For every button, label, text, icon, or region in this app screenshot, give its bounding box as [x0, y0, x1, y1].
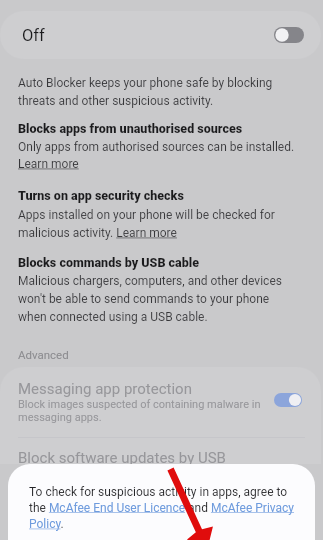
staticText: Apps installed on your phone will be che…	[18, 208, 297, 240]
staticText: Blocks commands by USB cable	[18, 255, 297, 270]
staticText: Block images suspected of containing mal…	[18, 398, 268, 424]
staticText: Off	[22, 26, 45, 45]
staticText: Auto Blocker keeps your phone safe by bl…	[18, 76, 297, 108]
button[interactable]: Messaging app protection, on	[274, 393, 302, 407]
staticText: Messaging app protection	[18, 380, 258, 398]
staticText: Advanced	[18, 348, 297, 361]
button[interactable]: Auto Blocker, off	[274, 27, 304, 43]
staticText: Turns on app security checks	[18, 188, 297, 203]
button[interactable]: Off	[0, 11, 321, 59]
button[interactable]: Learn more	[18, 157, 88, 171]
staticText: Only apps from authorised sources can be…	[18, 140, 297, 154]
staticText: Malicious chargers, computers, and other…	[18, 274, 297, 324]
staticText: Blocks apps from unauthorised sources	[18, 121, 297, 136]
staticText: To check for suspicious activity in apps…	[29, 485, 299, 531]
staticText: Block software updates by USB	[18, 449, 258, 467]
